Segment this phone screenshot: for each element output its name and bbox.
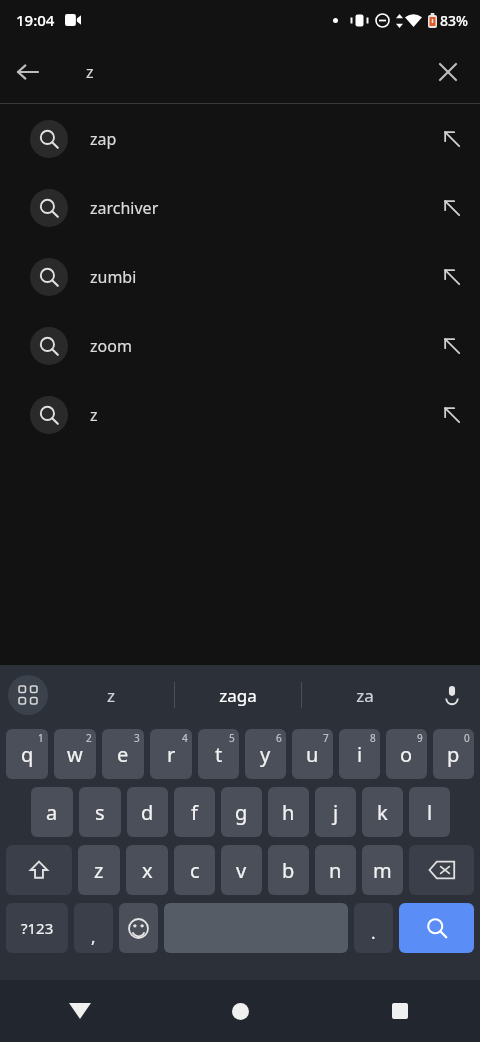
staticText: zoom bbox=[90, 335, 132, 357]
staticText: 0 bbox=[464, 731, 470, 745]
staticText: ?123 bbox=[21, 918, 54, 938]
button[interactable]: p bbox=[433, 729, 474, 779]
button[interactable]: Clear bbox=[420, 44, 476, 100]
button[interactable]: Insert zap bbox=[428, 115, 476, 163]
staticText: z bbox=[107, 684, 115, 707]
staticText: s bbox=[95, 799, 105, 826]
button[interactable]: Insert z bbox=[428, 391, 476, 439]
button[interactable]: a bbox=[31, 787, 73, 837]
button[interactable]: Keyboard options bbox=[8, 675, 48, 715]
staticText: j bbox=[333, 799, 339, 826]
button[interactable]: i bbox=[339, 729, 380, 779]
button[interactable]: h bbox=[268, 787, 309, 837]
staticText: u bbox=[306, 741, 319, 768]
staticText: z bbox=[90, 404, 98, 426]
button[interactable]: Backspace bbox=[409, 845, 474, 895]
staticText: i bbox=[357, 741, 363, 768]
button[interactable]: Insert zarchiver bbox=[428, 184, 476, 232]
button[interactable]: o bbox=[386, 729, 427, 779]
button[interactable]: Voice input bbox=[428, 671, 476, 719]
staticText: t bbox=[215, 741, 223, 768]
button[interactable]: b bbox=[268, 845, 309, 895]
button[interactable]: za bbox=[301, 665, 428, 725]
button[interactable]: Back bbox=[0, 44, 56, 100]
button[interactable]: zap bbox=[0, 104, 480, 173]
staticText: , bbox=[91, 925, 96, 948]
staticText: r bbox=[167, 741, 176, 768]
staticText: 9 bbox=[417, 731, 423, 745]
staticText: f bbox=[191, 799, 198, 826]
button[interactable]: z bbox=[48, 665, 174, 725]
button[interactable]: v bbox=[221, 845, 262, 895]
staticText: o bbox=[400, 741, 413, 768]
staticText: e bbox=[117, 741, 129, 768]
button[interactable]: Home bbox=[160, 980, 320, 1042]
staticText: 1 bbox=[38, 731, 44, 745]
staticText: k bbox=[377, 799, 388, 826]
button[interactable]: Back bbox=[0, 980, 160, 1042]
button[interactable]: n bbox=[315, 845, 356, 895]
staticText: 2 bbox=[86, 731, 92, 745]
staticText: zaga bbox=[219, 684, 257, 707]
staticText: d bbox=[141, 799, 154, 826]
staticText: 19:04 bbox=[16, 10, 55, 30]
button[interactable]: , bbox=[74, 903, 113, 953]
staticText: a bbox=[46, 799, 58, 826]
staticText: y bbox=[260, 741, 271, 768]
staticText: g bbox=[235, 799, 248, 826]
staticText: 5 bbox=[229, 731, 235, 745]
button[interactable]: Shift bbox=[6, 845, 72, 895]
button[interactable]: zumbi bbox=[0, 242, 480, 311]
button[interactable]: m bbox=[362, 845, 403, 895]
staticText: p bbox=[447, 741, 460, 768]
staticText: z bbox=[94, 857, 104, 884]
staticText: b bbox=[282, 857, 295, 884]
button[interactable]: q bbox=[6, 729, 48, 779]
button[interactable]: c bbox=[174, 845, 215, 895]
button[interactable]: x bbox=[126, 845, 168, 895]
button[interactable]: j bbox=[315, 787, 356, 837]
staticText: 8 bbox=[370, 731, 376, 745]
staticText: zap bbox=[90, 128, 117, 150]
button[interactable]: Insert zumbi bbox=[428, 253, 476, 301]
staticText: w bbox=[67, 741, 83, 768]
staticText: 7 bbox=[323, 731, 329, 745]
button[interactable]: r bbox=[150, 729, 192, 779]
staticText: h bbox=[282, 799, 295, 826]
staticText: zumbi bbox=[90, 266, 137, 288]
button[interactable]: z bbox=[78, 845, 120, 895]
button[interactable]: d bbox=[127, 787, 168, 837]
staticText: z bbox=[86, 61, 94, 83]
button[interactable]: . bbox=[354, 903, 393, 953]
button[interactable]: e bbox=[102, 729, 144, 779]
button[interactable]: Emoji bbox=[119, 903, 158, 953]
button[interactable]: Recents bbox=[320, 980, 480, 1042]
button[interactable]: Insert zoom bbox=[428, 322, 476, 370]
staticText: l bbox=[427, 799, 433, 826]
button[interactable]: y bbox=[245, 729, 286, 779]
staticText: x bbox=[142, 857, 153, 884]
button[interactable]: s bbox=[79, 787, 121, 837]
staticText: za bbox=[356, 684, 374, 707]
staticText: 4 bbox=[182, 731, 188, 745]
button[interactable]: zoom bbox=[0, 311, 480, 380]
staticText: v bbox=[236, 857, 247, 884]
button[interactable]: t bbox=[198, 729, 239, 779]
button[interactable]: l bbox=[409, 787, 450, 837]
button[interactable]: u bbox=[292, 729, 333, 779]
staticText: c bbox=[190, 857, 200, 884]
button[interactable]: zarchiver bbox=[0, 173, 480, 242]
button[interactable]: zaga bbox=[174, 665, 301, 725]
button[interactable]: w bbox=[54, 729, 96, 779]
button[interactable]: Search bbox=[399, 903, 474, 953]
staticText: n bbox=[329, 857, 342, 884]
staticText: 3 bbox=[134, 731, 140, 745]
button[interactable]: z bbox=[0, 380, 480, 449]
staticText: . bbox=[371, 921, 376, 944]
button[interactable]: ?123 bbox=[6, 903, 68, 953]
button[interactable]: k bbox=[362, 787, 403, 837]
button[interactable]: f bbox=[174, 787, 215, 837]
staticText: m bbox=[373, 857, 392, 884]
button[interactable]: g bbox=[221, 787, 262, 837]
